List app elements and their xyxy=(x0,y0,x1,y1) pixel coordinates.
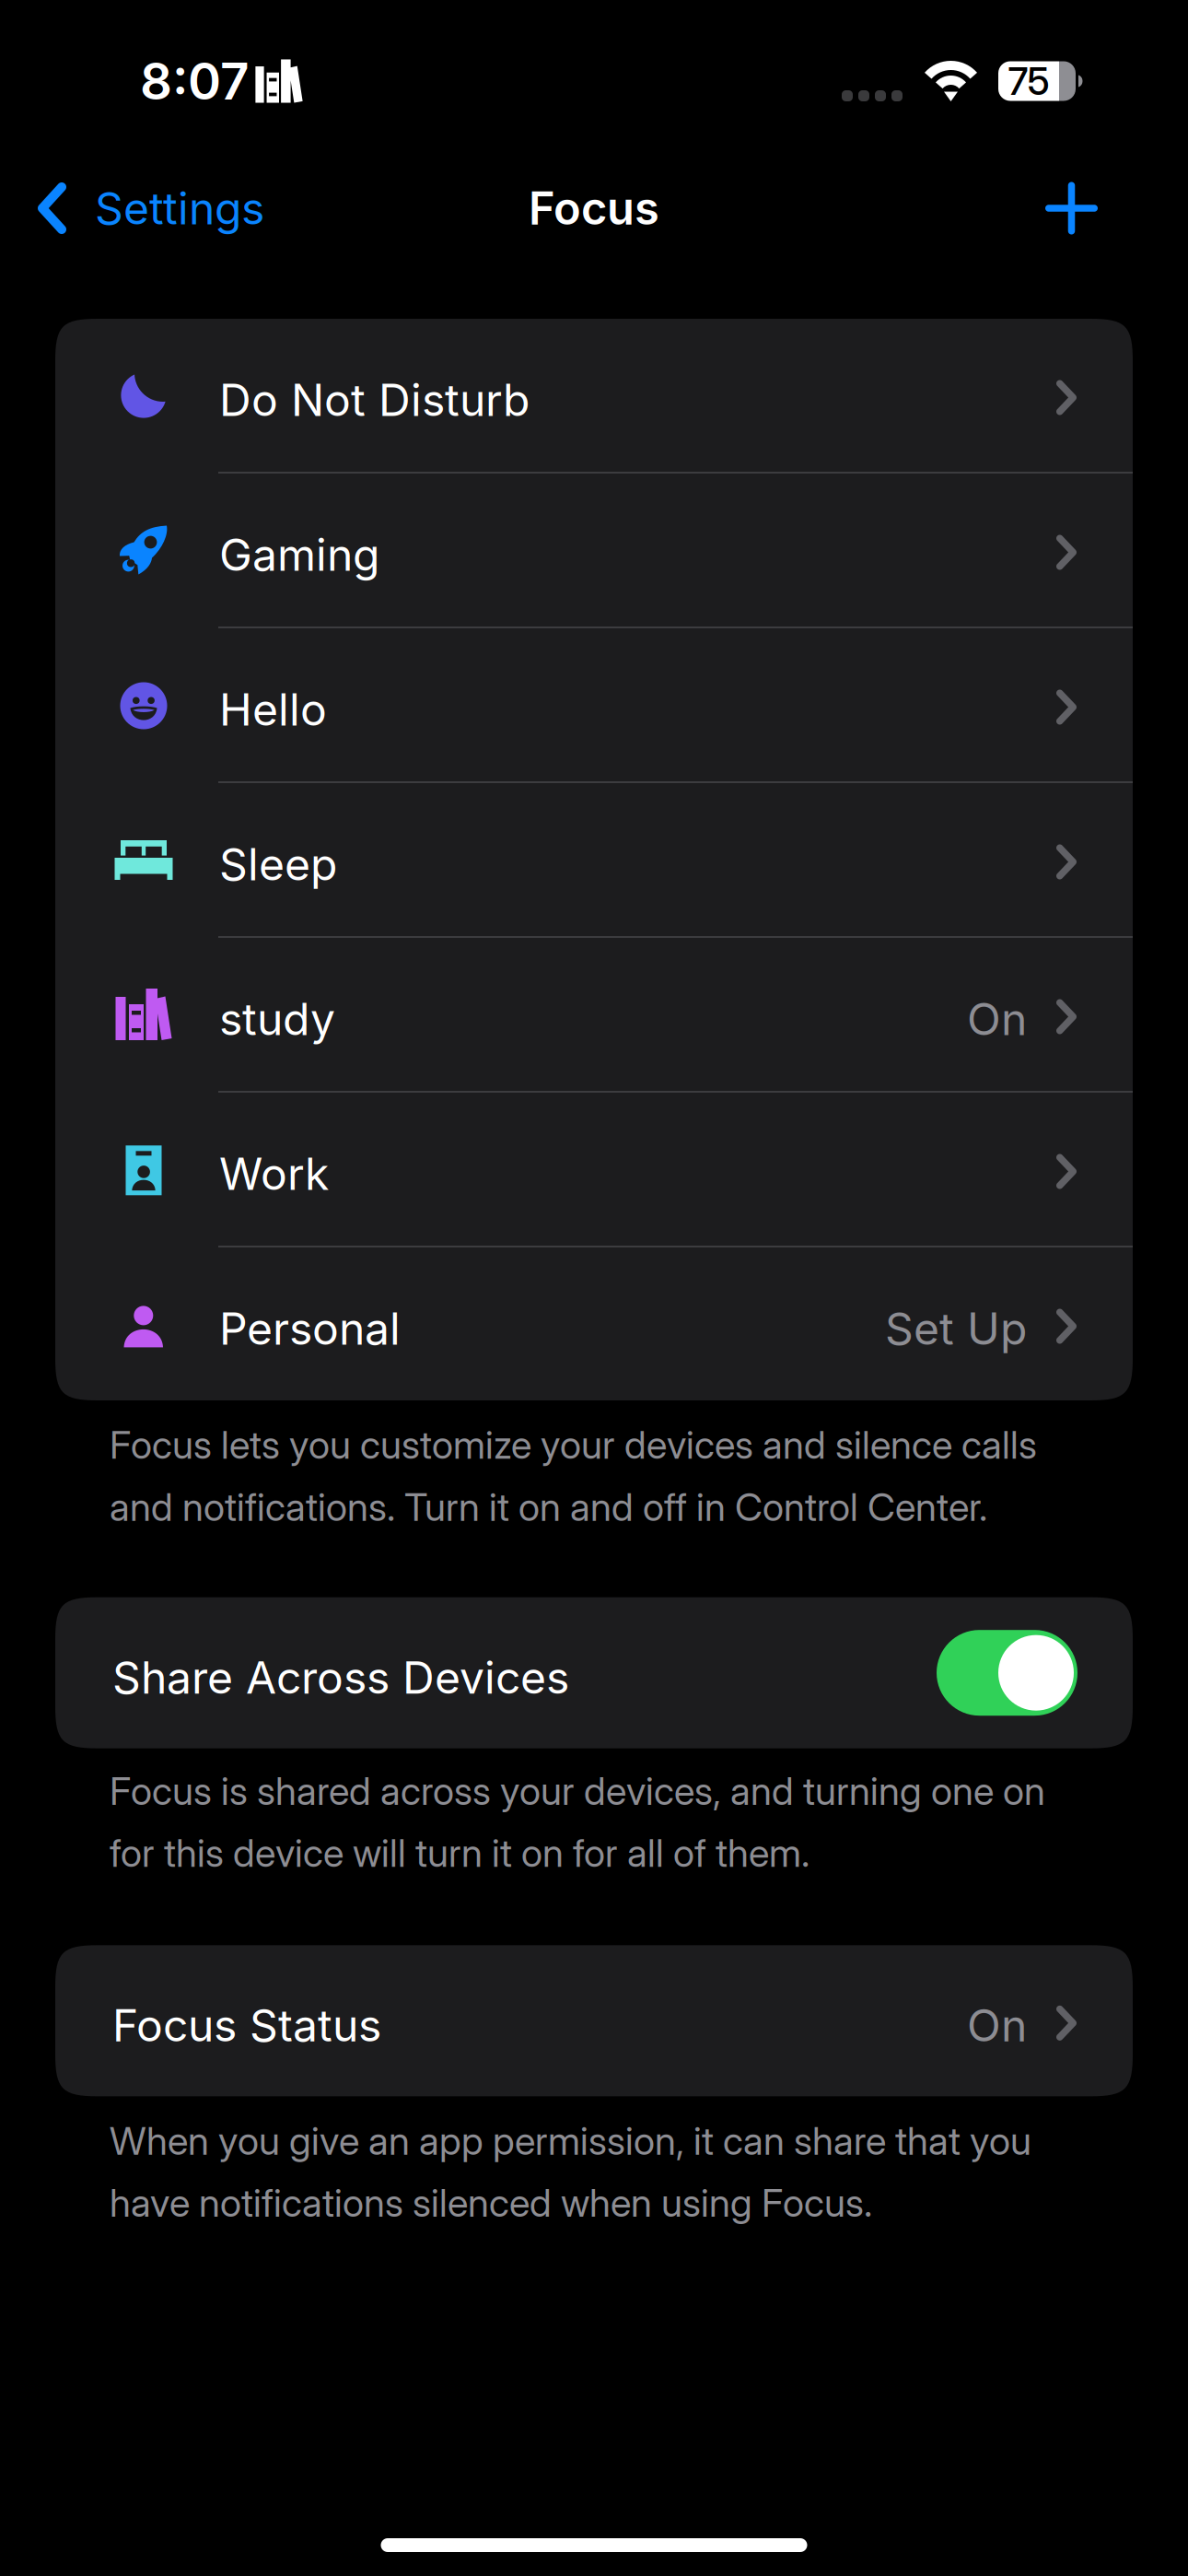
button[interactable]: Share Across Devices xyxy=(55,1597,1133,1748)
button[interactable]: Work xyxy=(55,1093,1133,1246)
button[interactable]: Settings xyxy=(0,147,264,269)
staticText: Sleep xyxy=(219,837,337,891)
button[interactable]: Focus Status xyxy=(55,1945,1133,2096)
staticText: and notifications. Turn it on and off in… xyxy=(110,1484,987,1530)
staticText: 75 xyxy=(1008,58,1049,104)
staticText: Settings xyxy=(95,181,264,235)
button[interactable]: Gaming xyxy=(55,474,1133,626)
button[interactable]: study xyxy=(55,938,1133,1091)
staticText: Focus xyxy=(529,181,659,235)
staticText: On xyxy=(967,992,1027,1046)
staticText: Share Across Devices xyxy=(112,1651,569,1704)
staticText: On xyxy=(967,1999,1027,2052)
staticText: Focus lets you customize your devices an… xyxy=(110,1422,1037,1468)
staticText: Hello xyxy=(219,683,327,736)
staticText: for this device will turn it on for all … xyxy=(110,1830,809,1876)
staticText: Focus is shared across your devices, and… xyxy=(110,1768,1045,1814)
staticText: study xyxy=(219,992,335,1046)
staticText: have notifications silenced when using F… xyxy=(110,2180,872,2226)
staticText: 8:07 xyxy=(140,51,249,111)
button[interactable]: Personal xyxy=(55,1247,1133,1400)
staticText: Focus Status xyxy=(112,1999,381,2052)
staticText: Set Up xyxy=(885,1302,1027,1355)
staticText: Do Not Disturb xyxy=(219,373,530,427)
button[interactable]: Add Focus xyxy=(1045,147,1188,269)
staticText: Gaming xyxy=(219,528,379,581)
button[interactable]: Sleep xyxy=(55,783,1133,936)
button[interactable]: Do Not Disturb xyxy=(55,319,1133,472)
staticText: Work xyxy=(219,1147,329,1201)
button[interactable]: Hello xyxy=(55,628,1133,781)
staticText: When you give an app permission, it can … xyxy=(110,2117,1031,2164)
staticText: Personal xyxy=(219,1302,401,1355)
